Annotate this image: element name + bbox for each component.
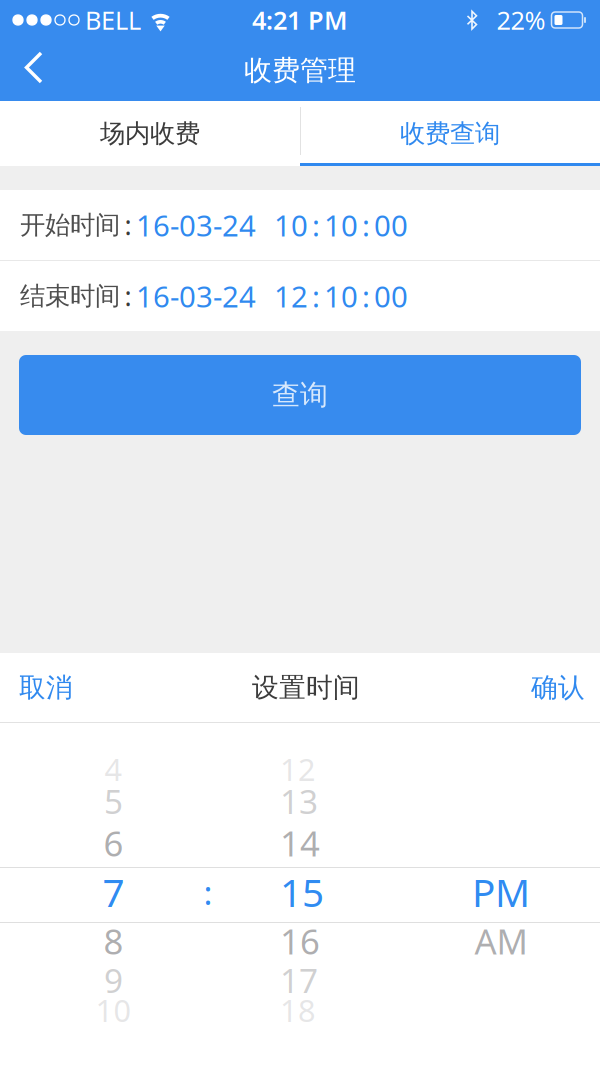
- staticText: 10: [324, 205, 358, 244]
- staticText: 22%: [496, 3, 545, 37]
- button[interactable]: 确认: [465, 653, 600, 722]
- staticText: 16-03-24: [136, 205, 256, 244]
- staticText: 18: [280, 990, 316, 1030]
- staticText: 13: [280, 779, 318, 823]
- button[interactable]: 结束时间: [0, 261, 600, 331]
- staticText: :: [124, 278, 131, 314]
- staticText: 14: [280, 820, 320, 866]
- staticText: :: [312, 205, 320, 244]
- staticText: 12: [280, 749, 316, 789]
- staticText: 6: [103, 820, 123, 866]
- button[interactable]: 场内收费: [0, 101, 300, 166]
- staticText: 设置时间: [252, 671, 360, 704]
- staticText: 查询: [272, 378, 328, 412]
- staticText: 16-03-24: [136, 276, 256, 315]
- button[interactable]: 收费查询: [300, 101, 600, 166]
- button[interactable]: 取消: [0, 653, 139, 722]
- button[interactable]: 开始时间: [0, 190, 600, 260]
- staticText: 确认: [531, 671, 585, 704]
- staticText: 10: [324, 276, 358, 315]
- button[interactable]: 查询: [19, 355, 581, 435]
- staticText: 结束时间: [20, 280, 120, 311]
- staticText: 4: [104, 749, 122, 789]
- staticText: 收费管理: [244, 53, 356, 88]
- staticText: 10: [95, 990, 131, 1030]
- staticText: 5: [104, 779, 123, 823]
- staticText: 15: [280, 866, 324, 918]
- staticText: :: [312, 276, 320, 315]
- staticText: 10: [274, 205, 308, 244]
- staticText: 12: [274, 276, 308, 315]
- staticText: :: [362, 205, 370, 244]
- staticText: 取消: [19, 671, 73, 704]
- staticText: :: [124, 207, 131, 243]
- button[interactable]: 返回: [0, 40, 64, 101]
- staticText: 00: [374, 205, 408, 244]
- staticText: AM: [474, 918, 527, 964]
- staticText: 9: [104, 958, 123, 1002]
- staticText: 开始时间: [20, 209, 120, 240]
- staticText: 场内收费: [100, 118, 200, 149]
- staticText: PM: [472, 866, 530, 918]
- staticText: 收费查询: [400, 118, 500, 149]
- staticText: 7: [102, 866, 124, 918]
- staticText: BELL: [85, 3, 141, 37]
- staticText: 8: [103, 918, 123, 964]
- staticText: :: [203, 870, 212, 914]
- staticText: 4:21 PM: [252, 3, 348, 37]
- staticText: :: [362, 276, 370, 315]
- staticText: 17: [280, 958, 318, 1002]
- staticText: 00: [374, 276, 408, 315]
- staticText: 16: [280, 918, 320, 964]
